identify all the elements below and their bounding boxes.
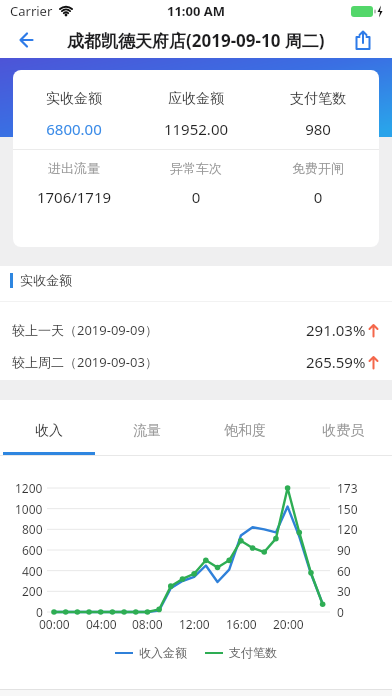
staticText: 90 <box>337 542 351 558</box>
staticText: 1706/1719 <box>13 187 135 207</box>
staticText: 120 <box>337 521 358 537</box>
staticText: 0 <box>36 604 43 620</box>
staticText: 30 <box>337 583 351 599</box>
staticText: Carrier <box>10 2 53 20</box>
button[interactable] <box>350 27 376 53</box>
staticText: 收费员 <box>322 422 364 440</box>
staticText: 04:00 <box>86 616 117 632</box>
staticText: 265.59% <box>306 352 366 372</box>
button[interactable]: 实收金额 <box>13 70 379 247</box>
staticText: 较上周二（2019-09-03） <box>12 353 158 371</box>
staticText: 11952.00 <box>135 119 257 139</box>
staticText: 成都凯德天府店(2019-09-10 周二) <box>67 29 325 52</box>
button[interactable]: 收入 <box>0 406 98 455</box>
staticText: 流量 <box>133 422 161 440</box>
staticText: 20:00 <box>273 616 304 632</box>
staticText: 应收金额 <box>135 90 257 108</box>
staticText: 600 <box>22 542 43 558</box>
staticText: 200 <box>22 583 43 599</box>
staticText: 1200 <box>15 480 43 496</box>
staticText: 150 <box>337 501 358 517</box>
staticText: 6800.00 <box>13 119 135 139</box>
staticText: 0 <box>257 187 379 207</box>
staticText: 173 <box>337 480 358 496</box>
staticText: 进出流量 <box>13 160 135 176</box>
staticText: 980 <box>257 119 379 139</box>
staticText: 11:00 AM <box>167 2 226 20</box>
button[interactable]: 收费员 <box>294 406 392 455</box>
staticText: 收入金额 <box>139 645 187 660</box>
staticText: 收入 <box>35 422 63 440</box>
button[interactable]: 较上一天（2019-09-09） <box>12 314 379 346</box>
staticText: 较上一天（2019-09-09） <box>12 321 158 339</box>
staticText: 异常车次 <box>135 160 257 176</box>
staticText: 08:00 <box>132 616 163 632</box>
button[interactable]: 饱和度 <box>196 406 294 455</box>
button[interactable]: 较上周二（2019-09-03） <box>12 346 379 378</box>
staticText: 实收金额 <box>13 90 135 108</box>
staticText: 00:00 <box>39 616 70 632</box>
staticText: 800 <box>22 521 43 537</box>
staticText: 12:00 <box>179 616 210 632</box>
staticText: 0 <box>337 604 344 620</box>
staticText: 400 <box>22 563 43 579</box>
staticText: 16:00 <box>226 616 257 632</box>
staticText: 支付笔数 <box>257 90 379 108</box>
staticText: 291.03% <box>306 320 366 340</box>
button[interactable]: 流量 <box>98 406 196 455</box>
staticText: 饱和度 <box>224 422 266 440</box>
staticText: 0 <box>135 187 257 207</box>
staticText: 实收金额 <box>20 272 72 288</box>
staticText: 支付笔数 <box>229 645 277 660</box>
staticText: 免费开闸 <box>257 160 379 176</box>
button[interactable] <box>14 28 38 52</box>
staticText: 60 <box>337 563 351 579</box>
staticText: 1000 <box>15 501 43 517</box>
